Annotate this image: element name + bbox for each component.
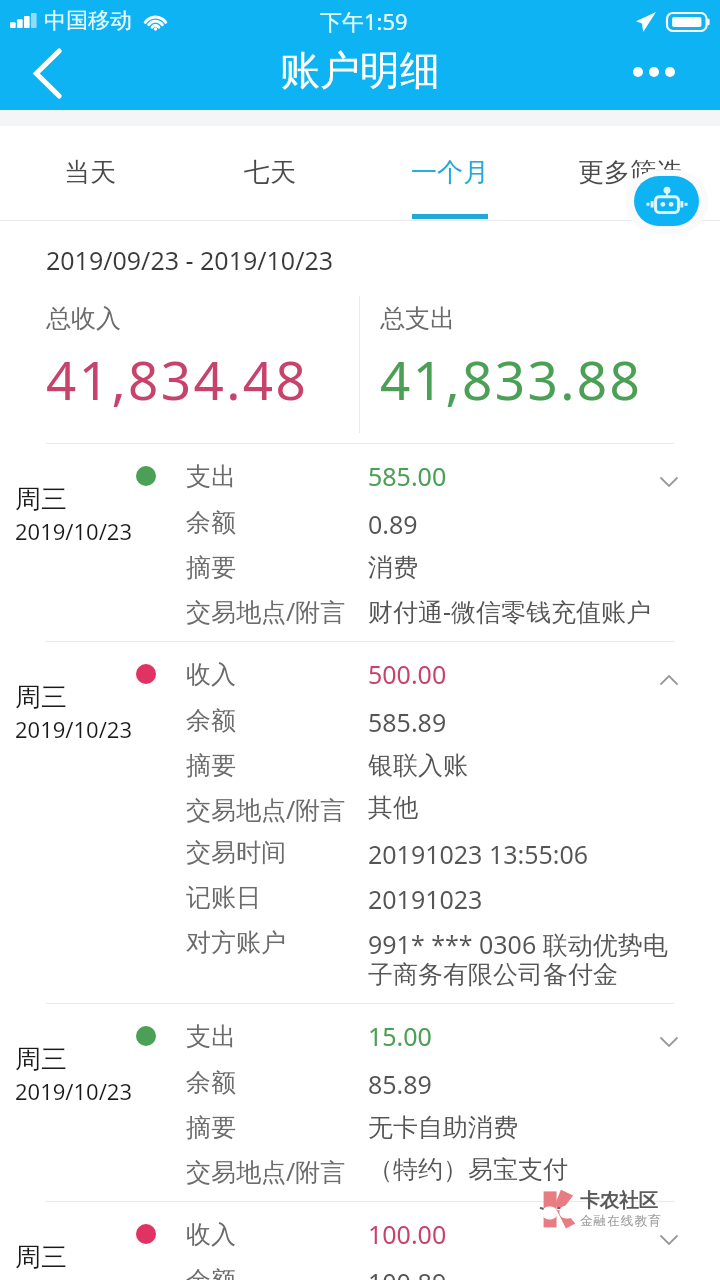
staticText: 银联入账 — [368, 750, 668, 781]
staticText: 41,833.88 — [380, 343, 643, 415]
staticText: 支出 — [186, 1021, 368, 1052]
staticText: 15.00 — [368, 1019, 432, 1053]
staticText: 当天 — [64, 156, 116, 189]
staticText: 41,834.48 — [46, 343, 309, 415]
staticText: 其他 — [368, 792, 668, 823]
staticText: 2019/10/23 — [15, 714, 133, 744]
staticText: 卡农社区 — [580, 1188, 658, 1213]
staticText: 0.89 — [368, 507, 668, 541]
staticText: 交易地点/附言 — [186, 1154, 368, 1188]
button[interactable]: 周三 — [0, 1202, 720, 1280]
staticText: 总收入 — [46, 303, 121, 334]
staticText: 财付通-微信零钱充值账户 — [368, 594, 668, 628]
staticText: 2019/10/23 — [15, 1076, 133, 1106]
staticText: 七天 — [244, 156, 296, 189]
staticText: 585.00 — [368, 459, 447, 493]
staticText: 摘要 — [186, 1112, 368, 1143]
staticText: 20191023 — [368, 882, 668, 916]
staticText: 991* *** 0306 联动优势电子商务有限公司备付金 — [368, 927, 668, 990]
button[interactable]: Chat assistant — [634, 176, 699, 226]
button[interactable]: 当天 — [0, 126, 180, 220]
staticText: 摘要 — [186, 750, 368, 781]
staticText: 无卡自助消费 — [368, 1112, 668, 1143]
staticText: 收入 — [186, 1219, 368, 1250]
staticText: 更多筛选 — [578, 156, 682, 189]
staticText: 余额 — [186, 705, 368, 736]
staticText: 总支出 — [380, 303, 455, 334]
staticText: 余额 — [186, 1265, 368, 1280]
staticText: 100.89 — [368, 1265, 668, 1280]
staticText: 中国移动 — [44, 7, 132, 35]
staticText: 100.00 — [368, 1217, 447, 1251]
staticText: 周三 — [15, 1241, 67, 1274]
staticText: 周三 — [15, 1043, 67, 1076]
button[interactable]: 周三 — [0, 444, 720, 641]
staticText: 交易地点/附言 — [186, 594, 368, 628]
button[interactable]: Back — [0, 44, 96, 110]
staticText: 账户明细 — [280, 45, 440, 95]
staticText: （特约）易宝支付 — [368, 1154, 668, 1185]
staticText: 500.00 — [368, 657, 447, 691]
staticText: 交易地点/附言 — [186, 792, 368, 826]
staticText: 下午1:59 — [320, 6, 408, 36]
button[interactable]: 七天 — [180, 126, 360, 220]
button[interactable]: 更多筛选 — [540, 126, 720, 220]
staticText: 消费 — [368, 552, 668, 583]
button[interactable]: 周三 — [0, 1004, 720, 1201]
staticText: 周三 — [15, 483, 67, 516]
button[interactable]: 周三 — [0, 642, 720, 1003]
staticText: 金融在线教育 — [580, 1213, 662, 1229]
button[interactable]: More options — [590, 44, 720, 110]
staticText: 记账日 — [186, 882, 368, 913]
staticText: 交易时间 — [186, 837, 368, 868]
staticText: 20191023 13:55:06 — [368, 837, 668, 871]
button[interactable]: 一个月 — [360, 126, 540, 220]
staticText: 余额 — [186, 1067, 368, 1098]
staticText: 余额 — [186, 507, 368, 538]
staticText: 周三 — [15, 681, 67, 714]
staticText: 585.89 — [368, 705, 668, 739]
staticText: 摘要 — [186, 552, 368, 583]
staticText: 一个月 — [411, 156, 489, 189]
staticText: 收入 — [186, 659, 368, 690]
staticText: 2019/09/23 - 2019/10/23 — [46, 243, 334, 277]
staticText: 对方账户 — [186, 927, 368, 958]
staticText: 支出 — [186, 461, 368, 492]
staticText: 2019/10/23 — [15, 516, 133, 546]
staticText: 85.89 — [368, 1067, 668, 1101]
